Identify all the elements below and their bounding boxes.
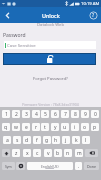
button[interactable]: Forgot Password?: [31, 75, 70, 83]
button[interactable]: s: [13, 136, 21, 144]
staticText: Unlock: [42, 12, 60, 19]
staticText: i: [74, 124, 76, 131]
staticText: ?: [92, 12, 95, 19]
staticText: 1: [5, 111, 8, 118]
button[interactable]: x: [23, 149, 31, 157]
staticText: m: [77, 150, 82, 157]
staticText: Case Sensitive: [7, 42, 36, 48]
staticText: Forgot Password?: [33, 76, 68, 82]
button[interactable]: 9: [81, 110, 89, 118]
staticText: 9: [84, 111, 87, 118]
button[interactable]: o: [81, 123, 89, 131]
staticText: 5: [44, 111, 47, 118]
staticText: 8: [74, 111, 77, 118]
staticText: Sym: [5, 164, 12, 169]
button[interactable]: d: [23, 136, 31, 144]
button[interactable]: Backspace: [85, 149, 98, 157]
staticText: .: [78, 163, 80, 170]
staticText: l: [85, 137, 87, 144]
staticText: 2: [15, 111, 18, 118]
button[interactable]: Help: [86, 7, 101, 23]
button[interactable]: Shift: [2, 149, 10, 157]
button[interactable]: 0: [91, 110, 99, 118]
staticText: 7: [64, 111, 67, 118]
staticText: r: [35, 124, 38, 131]
staticText: v: [47, 150, 50, 157]
staticText: a: [6, 137, 9, 144]
staticText: g: [45, 137, 49, 144]
button[interactable]: Keyboard settings: [16, 162, 25, 170]
staticText: p: [93, 124, 97, 131]
button[interactable]: k: [72, 136, 80, 144]
button[interactable]: f: [33, 136, 41, 144]
staticText: 6: [54, 111, 57, 118]
button[interactable]: m: [75, 149, 83, 157]
staticText: z: [15, 150, 18, 157]
button[interactable]: z: [12, 149, 20, 157]
staticText: x: [26, 150, 29, 157]
button[interactable]: 6: [51, 110, 59, 118]
button[interactable]: h: [52, 136, 60, 144]
staticText: d: [25, 137, 29, 144]
button[interactable]: n: [64, 149, 72, 157]
button[interactable]: l: [82, 136, 90, 144]
button[interactable]: Unlock: [4, 54, 95, 64]
staticText: f: [36, 137, 38, 144]
staticText: Datalock Web: [0, 22, 101, 28]
button[interactable]: 3: [22, 110, 30, 118]
button[interactable]: Done: [84, 162, 99, 170]
staticText: 0: [94, 111, 97, 118]
staticText: b: [56, 150, 60, 157]
button[interactable]: i: [71, 123, 79, 131]
button[interactable]: a: [3, 136, 11, 144]
button[interactable]: Case Sensitive: [4, 41, 96, 49]
button[interactable]: q: [2, 123, 10, 131]
staticText: e: [25, 124, 28, 131]
button[interactable]: 1: [2, 110, 10, 118]
button[interactable]: 4: [32, 110, 40, 118]
staticText: w: [14, 124, 18, 131]
button[interactable]: English(US): [27, 162, 73, 170]
staticText: Done: [87, 164, 97, 169]
button[interactable]: j: [62, 136, 70, 144]
staticText: 4: [35, 111, 38, 118]
staticText: n: [66, 150, 70, 157]
staticText: k: [75, 137, 78, 144]
staticText: j: [65, 137, 67, 144]
button[interactable]: .: [75, 162, 82, 170]
button[interactable]: w: [12, 123, 20, 131]
button[interactable]: e: [22, 123, 30, 131]
staticText: Password: [3, 32, 26, 39]
staticText: Firmware Version : 78x8.3dxx31904: [0, 102, 101, 107]
button[interactable]: c: [33, 149, 41, 157]
button[interactable]: p: [91, 123, 99, 131]
button[interactable]: 7: [61, 110, 69, 118]
button[interactable]: Back: [0, 7, 15, 23]
staticText: English(US): [41, 164, 59, 168]
button[interactable]: r: [32, 123, 40, 131]
staticText: u: [63, 124, 67, 131]
button[interactable]: 5: [41, 110, 49, 118]
staticText: y: [54, 124, 57, 131]
button[interactable]: Sym: [2, 162, 15, 170]
staticText: c: [36, 150, 39, 157]
staticText: 10:19 AM: [81, 1, 100, 7]
button[interactable]: v: [44, 149, 52, 157]
staticText: s: [16, 137, 19, 144]
button[interactable]: b: [54, 149, 62, 157]
button[interactable]: 8: [71, 110, 79, 118]
staticText: h: [54, 137, 58, 144]
button[interactable]: y: [51, 123, 59, 131]
staticText: o: [83, 124, 87, 131]
button[interactable]: u: [61, 123, 69, 131]
button[interactable]: 2: [12, 110, 20, 118]
staticText: t: [44, 124, 46, 131]
staticText: q: [4, 124, 8, 131]
button[interactable]: t: [41, 123, 49, 131]
button[interactable]: g: [43, 136, 51, 144]
staticText: 3: [25, 111, 28, 118]
